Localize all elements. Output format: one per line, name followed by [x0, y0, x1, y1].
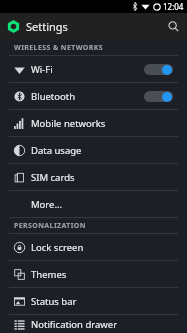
staticText: More…: [31, 198, 62, 211]
button[interactable]: Wi-Fi toggle: [144, 64, 173, 75]
staticText: Settings: [26, 19, 68, 34]
button[interactable]: Status bar: [0, 288, 187, 314]
staticText: Mobile networks: [31, 117, 106, 130]
staticText: WIRELESS & NETWORKS: [14, 43, 104, 53]
staticText: Themes: [31, 268, 67, 281]
staticText: Wi-Fi: [31, 63, 53, 76]
button[interactable]: Bluetooth toggle: [144, 91, 173, 102]
button[interactable]: More…: [0, 191, 187, 217]
staticText: Status bar: [31, 295, 77, 308]
staticText: Notification drawer: [31, 318, 118, 331]
button[interactable]: Wi-Fi: [0, 56, 187, 82]
staticText: Data usage: [31, 144, 82, 157]
button[interactable]: Mobile networks: [0, 110, 187, 136]
staticText: PERSONALIZATION: [14, 221, 86, 231]
staticText: Lock screen: [31, 241, 84, 254]
staticText: 12:04: [163, 1, 184, 12]
button[interactable]: SIM cards: [0, 164, 187, 190]
button[interactable]: Search: [160, 13, 187, 40]
button[interactable]: Data usage: [0, 137, 187, 163]
button[interactable]: Notification drawer: [0, 315, 187, 333]
staticText: Bluetooth: [31, 90, 76, 103]
button[interactable]: Lock screen: [0, 234, 187, 260]
staticText: SIM cards: [31, 171, 75, 184]
button[interactable]: Bluetooth: [0, 83, 187, 109]
button[interactable]: Themes: [0, 261, 187, 287]
